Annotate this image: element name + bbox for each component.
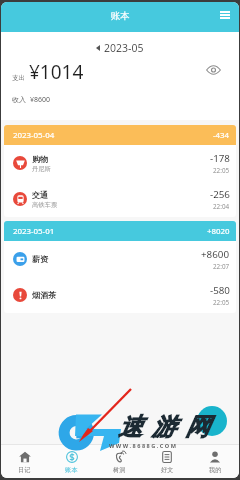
button[interactable]: 交通: [4, 181, 236, 217]
staticText: 购物: [32, 154, 48, 164]
button[interactable]: 薪资: [4, 241, 236, 277]
staticText: 速游网: [118, 412, 219, 442]
staticText: ¥8600: [30, 95, 51, 105]
staticText: ¥1014: [29, 59, 84, 85]
button[interactable]: Menu: [216, 6, 234, 24]
staticText: 2023-05: [104, 41, 144, 55]
staticText: 薪资: [32, 254, 48, 264]
staticText: 丹尼斯: [32, 165, 51, 173]
staticText: 好文: [161, 466, 174, 474]
button[interactable]: Toggle amount visibility: [199, 61, 227, 79]
staticText: 22:05: [213, 298, 230, 307]
staticText: 22:04: [213, 202, 230, 211]
button[interactable]: 日记: [1, 445, 48, 478]
staticText: 2023-05-01: [13, 226, 55, 237]
button[interactable]: 烟酒茶: [4, 277, 236, 313]
staticText: 账本: [65, 466, 78, 474]
button[interactable]: 2023-05: [96, 41, 144, 55]
staticText: 22:07: [213, 262, 230, 271]
staticText: 日记: [18, 466, 31, 474]
staticText: 支出: [12, 74, 25, 82]
staticText: 账本: [111, 10, 130, 22]
staticText: +8020: [207, 226, 230, 237]
staticText: 收入: [12, 95, 26, 104]
staticText: 我的: [209, 466, 222, 474]
staticText: -178: [210, 152, 230, 165]
staticText: 烟酒茶: [32, 290, 56, 300]
staticText: W W W . 8 6 8 8 G . C O M: [109, 442, 176, 450]
button[interactable]: 我的: [191, 445, 239, 478]
staticText: -580: [210, 284, 230, 297]
staticText: -434: [213, 130, 230, 141]
staticText: 交通: [32, 190, 48, 200]
staticText: +8600: [201, 248, 230, 261]
staticText: 高铁车票: [32, 201, 58, 209]
button[interactable]: 账本: [48, 445, 95, 478]
staticText: 树洞: [113, 466, 126, 474]
staticText: 2023-05-04: [13, 130, 55, 141]
button[interactable]: 树洞: [95, 445, 143, 478]
staticText: 22:05: [213, 166, 230, 175]
button[interactable]: 购物: [4, 145, 236, 181]
staticText: -256: [210, 188, 230, 201]
button[interactable]: 好文: [143, 445, 191, 478]
